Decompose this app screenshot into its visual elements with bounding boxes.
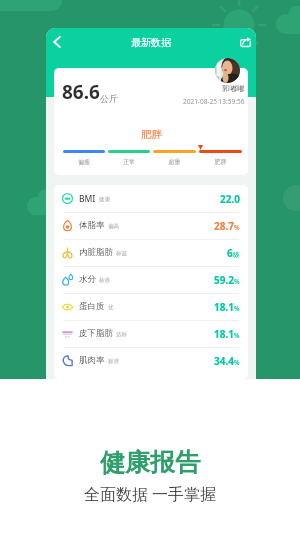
staticText: 肌肉率 (79, 355, 105, 366)
staticText: 2021-08-25 13:59:56 (183, 97, 245, 106)
staticText: 体脂率 (79, 220, 105, 231)
button[interactable]: 水分 (54, 266, 248, 293)
staticText: 最新数据 (131, 36, 171, 49)
staticText: 健康 (99, 196, 110, 203)
staticText: 公斤 (100, 93, 118, 104)
staticText: 18.1 (214, 300, 234, 314)
button[interactable]: Back (46, 28, 68, 56)
staticText: 正常 (108, 158, 150, 166)
button[interactable]: 皮下脂肪 (54, 320, 248, 347)
staticText: % (234, 304, 240, 313)
staticText: 达标 (116, 331, 127, 338)
staticText: 全面数据 一手掌握 (0, 483, 300, 505)
staticText: 86.6 (62, 79, 100, 105)
staticText: 偏高 (108, 223, 119, 230)
button[interactable]: Share (234, 28, 256, 56)
staticText: 标益 (116, 250, 127, 257)
staticText: % (234, 358, 240, 367)
staticText: BMI (79, 193, 96, 205)
staticText: 健康报告 (0, 447, 300, 478)
staticText: % (234, 223, 240, 232)
staticText: 内脏脂肪 (79, 247, 113, 258)
staticText: 优 (108, 304, 114, 311)
staticText: 级 (233, 251, 240, 259)
staticText: 郭嘟嘟 (222, 84, 245, 93)
staticText: 皮下脂肪 (79, 328, 113, 339)
staticText: 肥胖 (199, 158, 242, 166)
staticText: 标准 (108, 358, 119, 365)
staticText: 22.0 (220, 192, 240, 206)
button[interactable]: Profile photo (215, 58, 240, 83)
staticText: % (234, 331, 240, 340)
staticText: 肥胖 (141, 128, 162, 141)
button[interactable]: 体脂率 (54, 212, 248, 239)
staticText: 蛋白质 (79, 301, 105, 312)
staticText: 18.1 (214, 327, 234, 341)
staticText: 水分 (79, 274, 96, 285)
staticText: 28.7 (214, 219, 234, 233)
staticText: 超重 (153, 158, 196, 166)
button[interactable]: BMI (54, 185, 248, 212)
staticText: 偏瘦 (63, 158, 105, 166)
button[interactable]: 内脏脂肪 (54, 239, 248, 266)
staticText: 59.2 (214, 273, 234, 287)
staticText: 34.4 (214, 354, 234, 368)
button[interactable]: 蛋白质 (54, 293, 248, 320)
button[interactable]: 肌肉率 (54, 347, 248, 374)
staticText: 标准 (99, 277, 110, 284)
staticText: 6 (227, 246, 233, 260)
staticText: % (234, 277, 240, 286)
